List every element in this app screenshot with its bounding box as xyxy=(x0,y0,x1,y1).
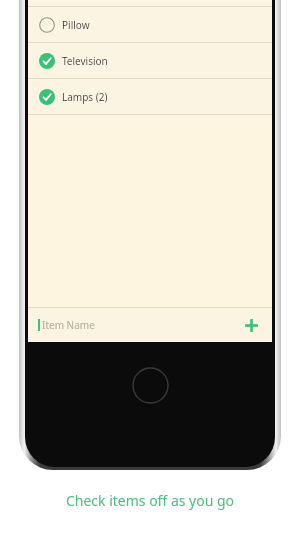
button[interactable]: Home xyxy=(132,367,169,404)
staticText: Pillow xyxy=(62,18,90,32)
staticText: Check items off as you go xyxy=(0,491,300,510)
button[interactable]: Add item xyxy=(236,310,266,340)
staticText: Item Name xyxy=(42,318,95,332)
staticText: Television xyxy=(62,54,108,68)
button[interactable]: Television xyxy=(28,43,272,78)
button[interactable]: Lamps (2) xyxy=(28,79,272,114)
staticText: Lamps (2) xyxy=(62,90,108,104)
button[interactable]: Pillow xyxy=(28,7,272,42)
